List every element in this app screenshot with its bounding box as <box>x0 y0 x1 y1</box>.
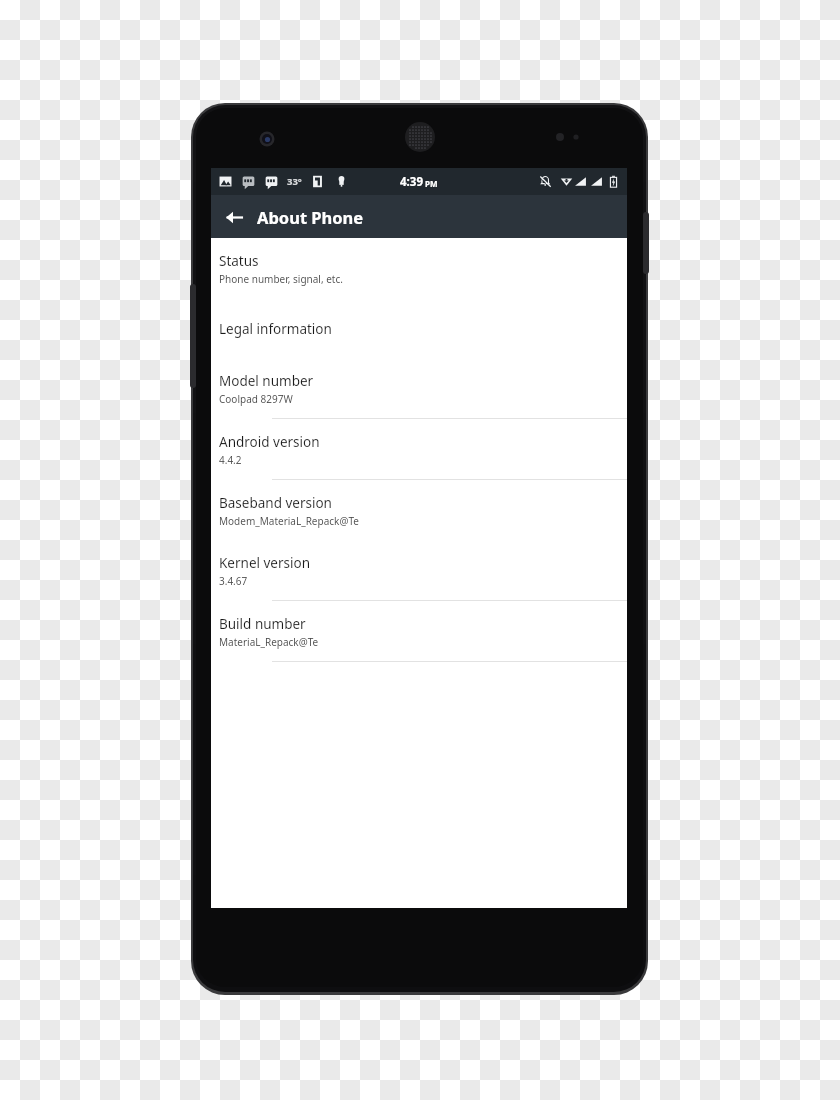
staticText: Build number <box>219 615 306 633</box>
staticText: Phone number, signal, etc. <box>219 272 343 286</box>
button[interactable]: Kernel version <box>211 532 627 601</box>
button[interactable]: Baseband version <box>211 480 627 532</box>
staticText: 4:39 <box>400 174 423 190</box>
staticText: 4.4.2 <box>219 453 242 467</box>
staticText: PM <box>425 178 438 189</box>
staticText: Android version <box>219 433 320 451</box>
staticText: Model number <box>219 372 314 390</box>
staticText: MateriaL_Repack@Te <box>219 635 319 649</box>
staticText: About Phone <box>257 206 364 228</box>
staticText: Baseband version <box>219 494 332 512</box>
staticText: 3.4.67 <box>219 574 248 588</box>
staticText: Modem_MateriaL_Repack@Te <box>219 514 359 528</box>
staticText: Status <box>219 252 259 270</box>
button[interactable]: Legal information <box>211 290 627 342</box>
staticText: Legal information <box>219 320 332 338</box>
staticText: 33° <box>287 175 302 188</box>
staticText: Coolpad 8297W <box>219 392 293 406</box>
button[interactable]: Status <box>211 238 627 290</box>
button[interactable]: Build number <box>211 601 627 662</box>
button[interactable]: Android version <box>211 419 627 480</box>
button[interactable]: Model number <box>211 342 627 419</box>
staticText: Kernel version <box>219 554 311 572</box>
button[interactable]: Back <box>219 202 249 232</box>
